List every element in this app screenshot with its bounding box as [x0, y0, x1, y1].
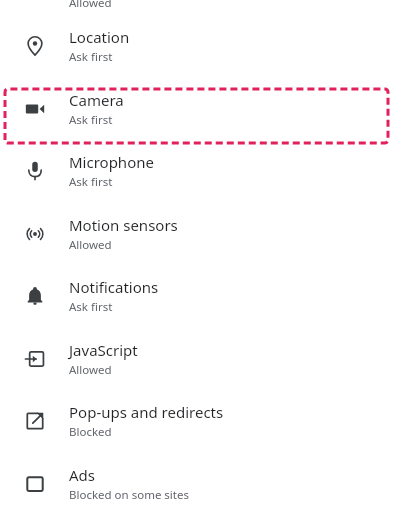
- staticText: Allowed: [69, 362, 112, 378]
- staticText: Blocked on some sites: [69, 487, 189, 503]
- button[interactable]: Notifications: [0, 271, 400, 321]
- staticText: Ads: [69, 465, 95, 485]
- staticText: Allowed: [69, 237, 112, 253]
- staticText: Motion sensors: [69, 215, 178, 235]
- staticText: Notifications: [69, 277, 159, 297]
- button[interactable]: Location: [0, 21, 400, 71]
- staticText: Location: [69, 27, 130, 47]
- staticText: Ask first: [69, 299, 113, 315]
- staticText: Allowed: [69, 0, 112, 11]
- button[interactable]: Microphone: [0, 146, 400, 196]
- staticText: Microphone: [69, 152, 154, 172]
- button[interactable]: Camera: [0, 84, 400, 134]
- staticText: Camera: [69, 90, 124, 110]
- button[interactable]: JavaScript: [0, 334, 400, 384]
- staticText: Ask first: [69, 112, 113, 128]
- button[interactable]: Motion sensors: [0, 209, 400, 259]
- button[interactable]: Pop-ups and redirects: [0, 396, 400, 446]
- staticText: JavaScript: [69, 340, 138, 360]
- staticText: Blocked: [69, 424, 112, 440]
- button[interactable]: Ads: [0, 459, 400, 509]
- staticText: Pop-ups and redirects: [69, 402, 224, 422]
- staticText: Ask first: [69, 174, 113, 190]
- staticText: Ask first: [69, 49, 113, 65]
